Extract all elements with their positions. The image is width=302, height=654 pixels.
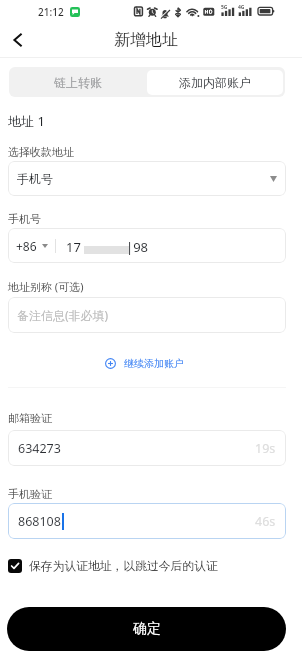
staticText: 保存为认证地址，以跳过今后的认证	[29, 559, 218, 574]
staticText: 868108	[18, 513, 61, 530]
button[interactable]: +86	[16, 238, 48, 254]
button[interactable]: 保存为认证地址，以跳过今后的认证	[8, 558, 218, 574]
staticText: 手机号	[8, 212, 41, 226]
staticText: 19s	[255, 440, 276, 457]
staticText: 手机号	[17, 171, 53, 186]
staticText: 确定	[133, 620, 161, 638]
staticText: 5G	[221, 4, 228, 11]
staticText: 4G	[238, 4, 245, 11]
button[interactable]: 返回	[3, 22, 33, 57]
button[interactable]: 备注信息(非必填)	[8, 297, 286, 333]
staticText: 链上转账	[54, 75, 102, 90]
staticText: 新增地址	[114, 30, 178, 50]
staticText: 地址别称 (可选)	[8, 279, 84, 294]
staticText: 地址 1	[8, 112, 45, 130]
staticText: 21:12	[38, 5, 64, 19]
staticText: 选择收款地址	[8, 145, 74, 159]
staticText: 46s	[255, 513, 276, 530]
button[interactable]: 手机号	[8, 161, 286, 196]
staticText: |98	[126, 238, 149, 256]
staticText: 17	[66, 238, 81, 256]
staticText: 继续添加账户	[124, 357, 184, 369]
button[interactable]: 确定	[7, 607, 286, 651]
staticText: 添加内部账户	[179, 75, 251, 90]
button[interactable]: 634273	[8, 430, 286, 466]
button[interactable]: 链上转账	[9, 67, 147, 97]
button[interactable]: 868108	[8, 503, 286, 539]
staticText: 邮箱验证	[8, 411, 52, 425]
button[interactable]: 添加内部账户	[147, 70, 283, 95]
staticText: 备注信息(非必填)	[17, 307, 109, 323]
staticText: 634273	[18, 440, 61, 457]
staticText: +86	[16, 238, 37, 254]
button[interactable]: 继续添加账户	[105, 357, 184, 369]
staticText: 手机验证	[8, 487, 52, 501]
